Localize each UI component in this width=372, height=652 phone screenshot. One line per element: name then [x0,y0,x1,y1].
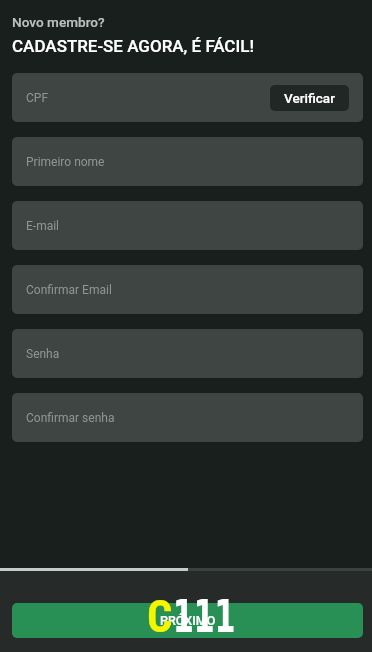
staticText: Senha [26,347,60,361]
button[interactable]: Primeiro nome [12,137,363,186]
staticText: CADASTRE-SE AGORA, É FÁCIL! [12,36,254,56]
button[interactable]: Verificar [270,85,349,111]
button[interactable]: Confirmar senha [12,393,363,442]
staticText: 111 [173,591,236,643]
staticText: CPF [26,91,49,105]
button[interactable]: Confirmar Email [12,265,363,314]
button[interactable]: Senha [12,329,363,378]
button[interactable]: PRÓXIMO [12,603,363,638]
button[interactable]: E-mail [12,201,363,250]
staticText: E-mail [26,219,60,233]
staticText: Novo membro? [12,14,105,30]
staticText: Confirmar senha [26,411,115,425]
other: Progresso do cadastro [0,568,372,571]
staticText: Verificar [284,90,335,106]
staticText: PRÓXIMO [160,613,216,628]
staticText: Confirmar Email [26,283,112,297]
button[interactable]: CPF [12,73,363,122]
staticText: C [147,591,173,643]
staticText: Primeiro nome [26,155,105,169]
